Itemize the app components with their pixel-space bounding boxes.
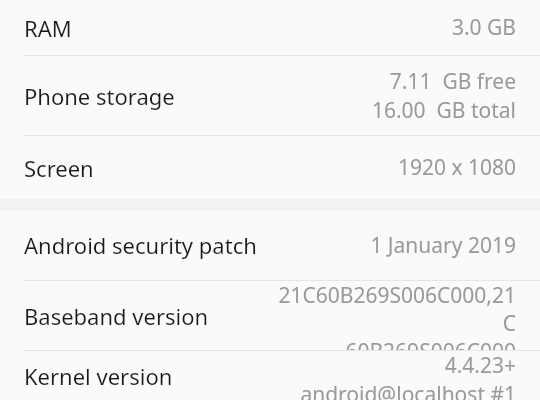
staticText: 7.11 GB free [389, 67, 516, 96]
button[interactable]: Kernel version [0, 351, 540, 400]
staticText: 60B269S006C000 [345, 337, 516, 350]
button[interactable]: Android security patch [0, 210, 540, 280]
staticText: Phone storage [24, 81, 274, 111]
button[interactable]: Phone storage [0, 56, 540, 135]
staticText: Kernel version [24, 361, 274, 391]
staticText: 1920 x 1080 [397, 153, 516, 182]
button[interactable]: Screen [0, 136, 540, 199]
staticText: 16.00 GB total [371, 96, 516, 125]
staticText: 4.4.23+ [444, 351, 516, 380]
button[interactable]: RAM [0, 0, 540, 55]
staticText: 3.0 GB [451, 13, 516, 42]
button[interactable]: Baseband version [0, 281, 540, 350]
staticText: android@localhost #1 [300, 380, 516, 400]
staticText: 1 January 2019 [370, 231, 516, 260]
staticText: Android security patch [24, 230, 274, 260]
staticText: Screen [24, 153, 274, 183]
staticText: Baseband version [24, 301, 274, 331]
staticText: RAM [24, 13, 274, 43]
staticText: 21C60B269S006C000,21C [274, 281, 516, 337]
